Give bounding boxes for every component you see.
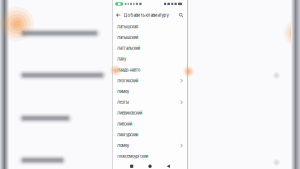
button[interactable]: Лингурский bbox=[112, 129, 188, 140]
button[interactable]: Главный экран bbox=[145, 162, 155, 169]
button[interactable]: Поиск bbox=[177, 11, 185, 19]
button[interactable]: Лаадо-навто bbox=[112, 65, 188, 75]
staticText: Лаку bbox=[117, 57, 126, 62]
staticText: Лезгинский bbox=[117, 78, 138, 83]
button[interactable]: Лаку bbox=[112, 54, 188, 65]
staticText: Латгальский bbox=[117, 46, 140, 51]
staticText: Добавить клавиатуру bbox=[124, 12, 169, 18]
button[interactable]: Латгальский bbox=[112, 43, 188, 54]
staticText: Лингурский bbox=[117, 132, 138, 137]
staticText: Латышская bbox=[117, 24, 138, 29]
staticText: Ливвиковский bbox=[117, 111, 142, 116]
staticText: Лезгы bbox=[117, 100, 129, 105]
button[interactable]: Латышская bbox=[112, 21, 188, 32]
button[interactable]: Назад bbox=[164, 162, 173, 169]
button[interactable]: Последние приложения bbox=[127, 162, 136, 169]
button[interactable]: Люксембургский bbox=[112, 151, 188, 162]
button[interactable]: Ливский bbox=[112, 118, 188, 129]
button[interactable]: Лезгинский bbox=[112, 75, 188, 86]
staticText: Латышский bbox=[117, 35, 138, 40]
button[interactable]: Назад bbox=[115, 11, 122, 19]
button[interactable]: Ломбу bbox=[112, 140, 188, 151]
staticText: Лаадо-навто bbox=[117, 68, 140, 72]
button[interactable]: Ливвиковский bbox=[112, 108, 188, 119]
staticText: Люксембургский bbox=[117, 154, 148, 159]
button[interactable]: Латышский bbox=[112, 32, 188, 43]
staticText: Ломбу bbox=[117, 143, 129, 148]
button[interactable]: Лезгы bbox=[112, 97, 188, 108]
button[interactable]: Лимбу bbox=[112, 86, 188, 97]
staticText: Лимбу bbox=[117, 89, 129, 94]
staticText: Ливский bbox=[117, 122, 132, 126]
